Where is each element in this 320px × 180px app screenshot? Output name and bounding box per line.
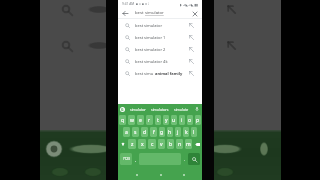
button[interactable]: best simulator 4k [118,55,202,67]
button[interactable]: ?123 [120,153,132,165]
button[interactable]: e [137,115,144,125]
button[interactable]: Recents [179,170,188,179]
button[interactable]: best simulator [118,19,202,31]
button[interactable]: d [141,127,148,137]
button[interactable]: w [128,115,135,125]
button[interactable]: best simulator 1 [118,31,202,43]
staticText: , [135,157,137,162]
staticText: k [185,129,188,136]
button[interactable]: z [128,139,136,149]
button[interactable]: a [123,127,130,137]
staticText: ?123 [123,157,130,161]
staticText: d [143,129,147,136]
button[interactable]: Shift [118,139,127,149]
staticText: simulate [174,107,189,112]
staticText: v [160,141,163,148]
staticText: o [188,117,192,124]
staticText: best simu [135,71,155,76]
button[interactable]: best simu [118,67,202,79]
button[interactable]: k [183,127,189,137]
button[interactable]: u [171,115,177,125]
staticText: simulator [145,10,164,16]
staticText: a [125,129,128,136]
staticText: r [148,117,151,124]
staticText: z [131,141,134,148]
staticText: f [153,129,155,136]
button[interactable]: q [119,115,126,125]
staticText: ◗ ⊿◣⊿◣ ▮▮ [180,2,199,7]
staticText: p [196,117,200,124]
button[interactable]: Google [120,107,125,112]
staticText: x [141,141,144,148]
staticText: best [135,10,145,16]
staticText: i [181,117,183,124]
button[interactable]: h [167,127,173,137]
staticText: b [169,141,173,148]
staticText: simulator [130,107,146,112]
staticText: e [139,117,142,124]
button[interactable]: c [148,139,156,149]
button[interactable]: Period [181,153,188,165]
staticText: 9:41 AM ▪ ▫ ▪ ⊙ ⁞ [122,2,150,6]
button[interactable]: t [155,115,161,125]
button[interactable]: Search [188,153,200,165]
staticText: animal family [155,71,183,76]
button[interactable]: Home [156,170,165,179]
staticText: q [121,117,125,124]
button[interactable]: o [187,115,193,125]
staticText: best simulator 1 [135,35,166,40]
staticText: j [177,129,179,136]
staticText: best simulator 4k [135,59,168,64]
staticText: s [134,129,137,136]
button[interactable]: Voice input [194,106,200,112]
staticText: w [130,117,134,124]
staticText: c [151,141,154,148]
button[interactable]: v [158,139,165,149]
button[interactable]: f [150,127,157,137]
staticText: u [172,117,176,124]
staticText: n [178,141,182,148]
button[interactable]: Comma [132,153,139,165]
button[interactable]: Back [121,9,130,18]
staticText: best simulator 2 [135,47,166,52]
staticText: best simulator [135,23,163,28]
button[interactable]: best simulator 2 [118,43,202,55]
button[interactable]: g [159,127,165,137]
staticText: G [121,107,124,112]
button[interactable]: m [185,139,192,149]
staticText: y [165,117,168,124]
button[interactable]: s [132,127,139,137]
button[interactable]: i [179,115,185,125]
button[interactable]: p [195,115,201,125]
staticText: m [186,141,191,148]
staticText: g [160,129,164,136]
staticText: . [184,157,186,162]
button[interactable]: n [176,139,183,149]
button[interactable]: j [175,127,181,137]
staticText: simulators [151,107,169,112]
button[interactable]: y [163,115,169,125]
button[interactable]: Back [132,170,141,179]
staticText: h [168,129,172,136]
button[interactable]: b [167,139,174,149]
button[interactable]: l [191,127,197,137]
button[interactable]: x [138,139,146,149]
staticText: l [193,129,195,136]
staticText: t [157,117,159,124]
button[interactable]: Backspace [193,139,202,149]
button[interactable]: Clear search [190,9,199,18]
button[interactable]: r [146,115,153,125]
